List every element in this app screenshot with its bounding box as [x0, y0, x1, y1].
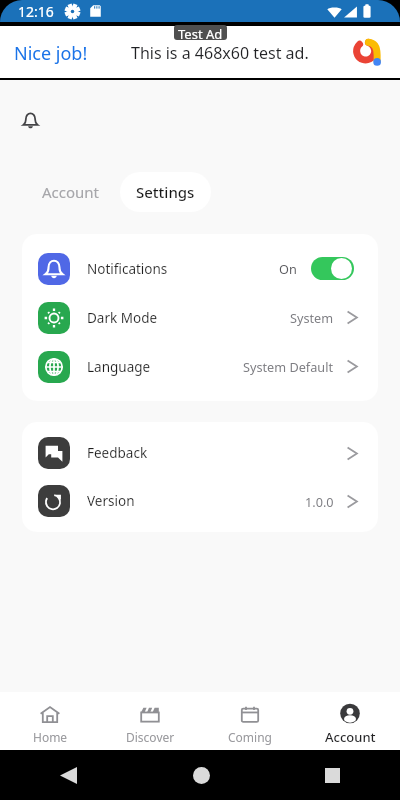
button[interactable]: Notifications toggle [311, 257, 354, 280]
staticText: This is a 468x60 test ad. [131, 42, 309, 64]
staticText: Dark Mode [87, 309, 158, 327]
button[interactable]: Settings [120, 172, 211, 212]
staticText: System Default [243, 358, 334, 375]
button[interactable]: Feedback [22, 429, 378, 477]
staticText: Account [325, 728, 376, 746]
staticText: Nice job! [14, 41, 88, 66]
staticText: Home [33, 729, 68, 745]
button[interactable]: Notifications [10, 100, 50, 140]
button[interactable]: Version [22, 477, 378, 525]
staticText: Language [87, 358, 151, 376]
button[interactable]: Account [300, 692, 400, 750]
staticText: Account [42, 182, 100, 202]
staticText: Settings [136, 182, 195, 202]
button[interactable]: Coming [200, 692, 300, 750]
button[interactable]: Dark Mode [22, 293, 378, 342]
staticText: Version [87, 492, 135, 510]
staticText: Notifications [87, 260, 168, 278]
staticText: Test Ad [178, 25, 223, 40]
staticText: Feedback [87, 444, 148, 462]
button[interactable]: Home [0, 692, 100, 750]
staticText: Discover [126, 729, 175, 745]
other: Back [60, 767, 77, 784]
button[interactable]: Account [22, 172, 120, 212]
other: Home [193, 767, 210, 784]
button[interactable]: Language [22, 342, 378, 391]
staticText: On [279, 260, 297, 277]
staticText: 1.0.0 [305, 493, 334, 510]
button[interactable]: Notifications [22, 244, 378, 293]
staticText: Coming [228, 729, 272, 745]
staticText: System [290, 309, 334, 326]
staticText: 12:16 [18, 2, 54, 21]
button[interactable]: Discover [100, 692, 200, 750]
